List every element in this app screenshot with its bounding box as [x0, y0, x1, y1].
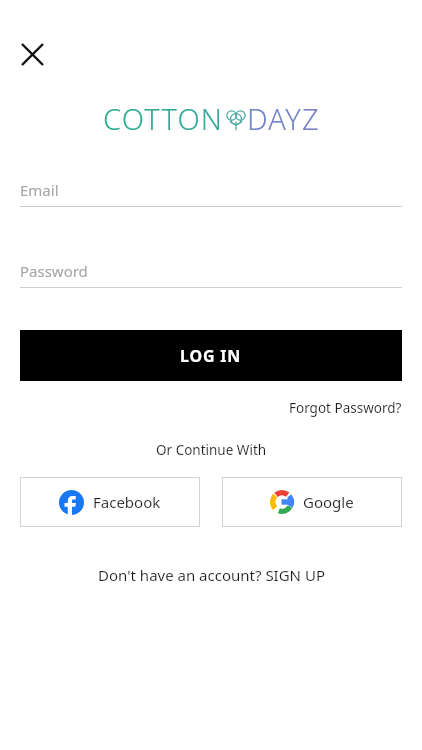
- staticText: Don't have an account? SIGN UP: [98, 565, 325, 585]
- staticText: Email: [20, 180, 59, 200]
- button[interactable]: LOG IN: [20, 330, 402, 381]
- button[interactable]: Password: [20, 261, 402, 288]
- button[interactable]: Don't have an account? SIGN UP: [90, 561, 333, 589]
- staticText: LOG IN: [180, 345, 242, 367]
- staticText: Password: [20, 261, 88, 281]
- button[interactable]: Forgot Password?: [289, 399, 402, 417]
- button[interactable]: Email: [20, 180, 402, 207]
- staticText: Google: [303, 492, 354, 512]
- staticText: COTTON: [103, 99, 224, 138]
- staticText: Forgot Password?: [289, 399, 402, 417]
- button[interactable]: Close: [10, 32, 54, 76]
- staticText: Facebook: [93, 492, 161, 512]
- staticText: DAYZ: [247, 99, 320, 138]
- button[interactable]: Google: [222, 477, 402, 527]
- staticText: Or Continue With: [156, 441, 267, 459]
- button[interactable]: Facebook: [20, 477, 200, 527]
